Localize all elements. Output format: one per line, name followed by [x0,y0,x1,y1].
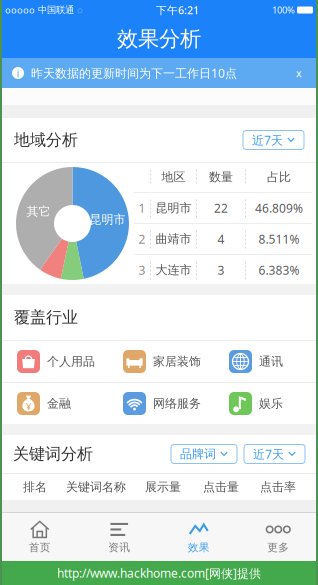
staticText: 关键词分析 [13,444,93,464]
staticText: 网络服务 [153,396,201,411]
staticText: 娱乐 [259,396,283,411]
staticText: 4 [217,231,224,247]
staticText: ¥ [26,400,31,412]
staticText: x [296,66,302,80]
staticText: 1 [138,200,145,216]
button[interactable]: ¥ [0,383,106,424]
staticText: i [16,66,19,80]
staticText: 地区 [161,170,185,184]
staticText: 6.383% [258,262,299,278]
button[interactable]: 家居装饰 [106,341,212,382]
staticText: 22 [214,200,228,216]
staticText: 关键词名称 [66,480,126,494]
button[interactable]: 效果 [159,513,238,561]
staticText: 46.809% [255,200,303,216]
staticText: ooooo [5,4,35,16]
staticText: 效果 [188,541,210,554]
staticText: 占比 [267,170,291,184]
staticText: 3 [138,262,145,278]
staticText: 首页 [29,541,51,554]
button[interactable]: 品牌词 [171,444,237,463]
button[interactable]: 资讯 [79,513,159,561]
staticText: 昆明市 [89,212,125,227]
staticText: 点击量 [203,480,239,494]
staticText: 下午6:21 [156,3,199,17]
button[interactable]: Close [292,66,306,80]
staticText: http://www.hackhome.com[网侠]提供 [57,565,261,581]
staticText: 通讯 [259,354,283,369]
staticText: 个人用品 [47,354,95,369]
staticText: 2 [138,231,145,247]
staticText: 更多 [267,541,289,554]
staticText: 覆盖行业 [14,308,78,327]
staticText: 中国联通 [35,4,77,16]
staticText: 昆明市 [155,201,191,215]
staticText: 排名 [23,480,47,494]
staticText: 曲靖市 [155,232,191,246]
staticText: 品牌词 [180,447,216,461]
button[interactable]: 个人用品 [0,341,106,382]
staticText: 昨天数据的更新时间为下一工作日10点 [31,65,237,81]
button[interactable]: 娱乐 [212,383,318,424]
staticText: 家居装饰 [153,354,201,369]
staticText: 8.511% [258,231,299,247]
staticText: 点击率 [260,480,296,494]
staticText: 3 [217,262,224,278]
button[interactable]: 首页 [0,513,79,561]
staticText: 近7天 [253,446,284,462]
button[interactable]: 更多 [238,513,318,561]
button[interactable]: 近7天 [244,444,305,463]
staticText: 地域分析 [14,130,78,150]
button[interactable]: 网络服务 [106,383,212,424]
staticText: 效果分析 [117,26,201,52]
staticText: 近7天 [252,132,283,148]
staticText: 金融 [47,396,71,411]
staticText: 其它 [26,204,50,219]
staticText: 大连市 [155,263,191,277]
staticText: 资讯 [108,541,130,554]
button[interactable]: 近7天 [243,130,304,149]
button[interactable]: 通讯 [212,341,318,382]
staticText: 数量 [209,170,233,184]
staticText: ◌ [77,4,83,16]
staticText: 100% [272,4,297,16]
staticText: 展示量 [145,480,181,494]
